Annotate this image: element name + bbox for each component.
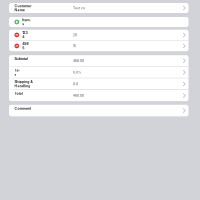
button[interactable]: Tax [9,67,188,78]
staticText: 0.0% [73,70,81,74]
staticText: Items [22,18,31,26]
staticText: Subtotal [14,57,28,65]
button[interactable]: Comment [9,105,188,116]
staticText: Test co [73,6,85,10]
staticText: 460.00 [73,93,84,97]
button[interactable]: Items [9,17,188,27]
button[interactable]: Customer Name [9,3,188,13]
button[interactable]: 4565 [9,41,188,51]
button[interactable]: Subtotal [9,55,188,66]
staticText: 20 [73,33,77,37]
staticText: Shipping & Handling [14,80,32,88]
button[interactable]: 1234 [9,30,188,40]
staticText: 15 [73,44,76,48]
staticText: 1234 [22,31,27,39]
staticText: Comment [14,106,31,115]
staticText: 0.0 [73,82,78,86]
staticText: Tax [14,68,19,77]
staticText: 4565 [22,42,28,50]
button[interactable]: Shipping & Handling [9,78,188,89]
staticText: Total [14,91,23,100]
button[interactable]: Total [9,90,188,101]
staticText: 460.00 [73,59,84,63]
staticText: Customer Name [14,4,31,12]
